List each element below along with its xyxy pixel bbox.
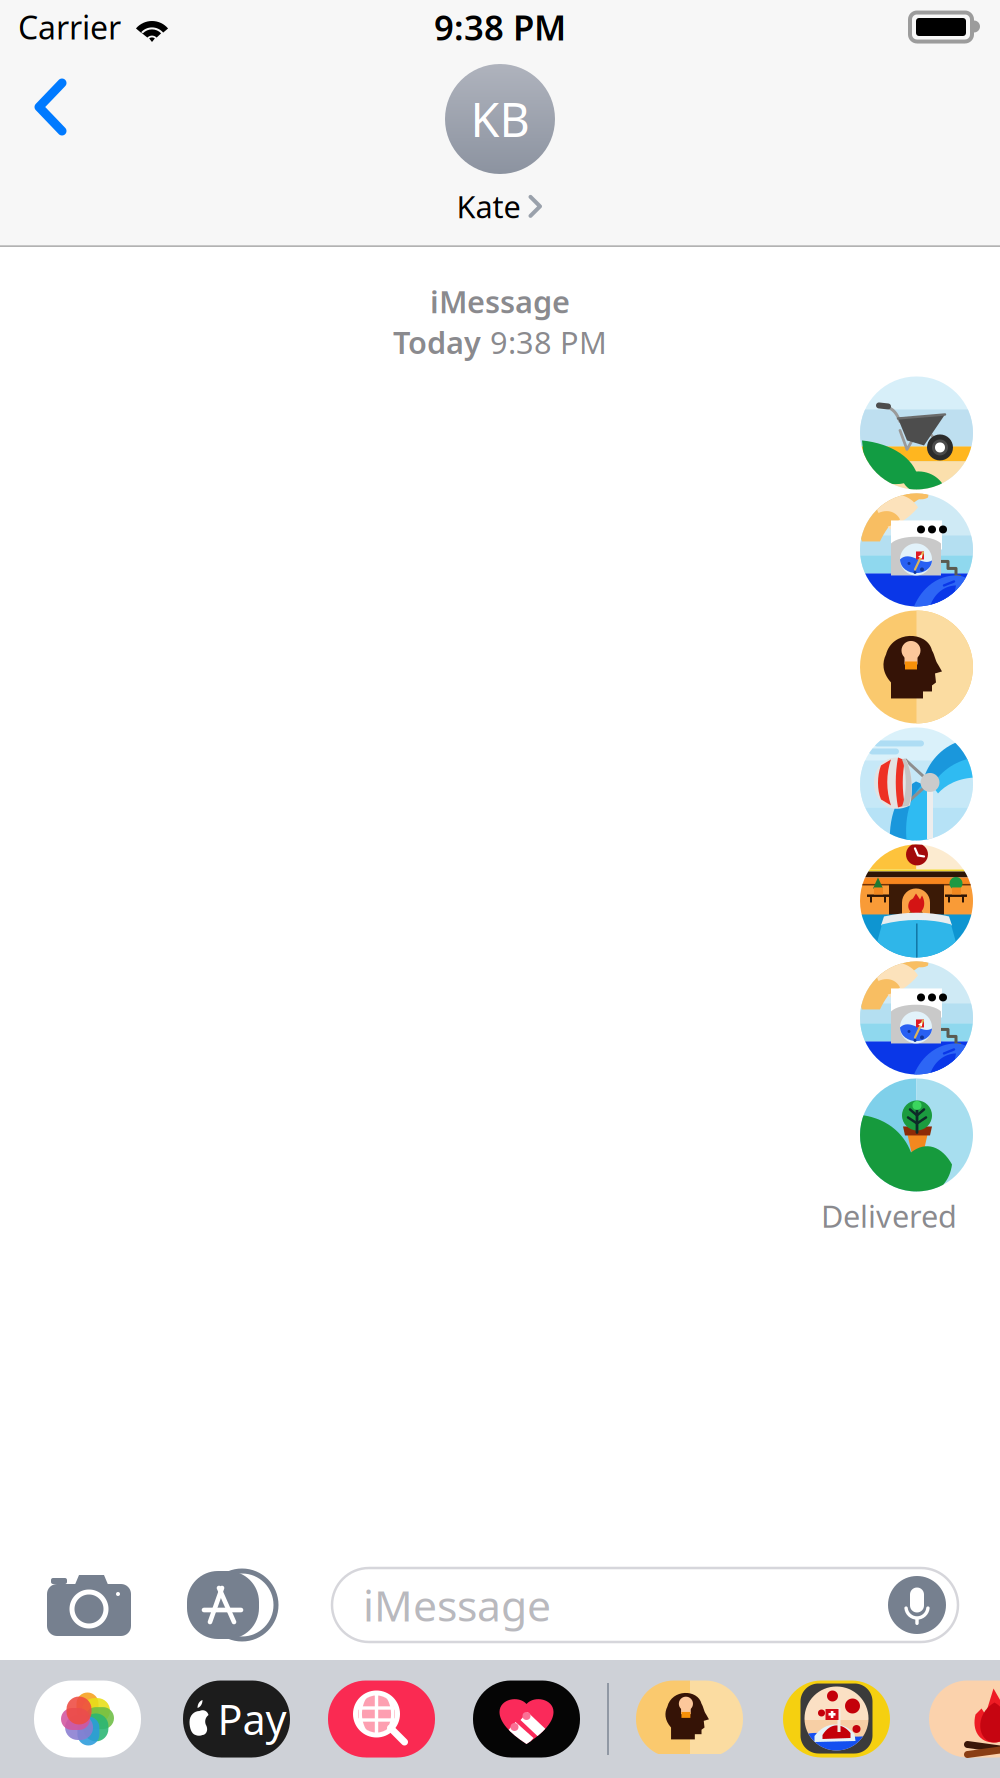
button[interactable]: Camera <box>37 1559 141 1651</box>
button[interactable]: Back <box>0 54 96 160</box>
button[interactable]: iMessage <box>332 1568 958 1642</box>
staticText: Carrier <box>18 6 121 48</box>
button[interactable]: Campfire Stickers <box>929 1680 1000 1757</box>
staticText: Kate <box>456 186 520 227</box>
staticText: 9:38 PM <box>490 322 607 362</box>
staticText: iMessage <box>430 281 570 322</box>
button[interactable]: Memoji Stickers <box>636 1680 743 1757</box>
button[interactable]: Digital Touch <box>473 1680 580 1757</box>
button[interactable]: Sticker Pack <box>783 1680 890 1757</box>
button[interactable]: Photos <box>34 1680 141 1757</box>
staticText: Delivered <box>821 1195 957 1236</box>
staticText: KB <box>470 88 529 150</box>
button[interactable]: Image Search <box>328 1680 435 1757</box>
staticText: Pay <box>217 1692 286 1746</box>
staticText: Today <box>393 322 481 362</box>
button[interactable]: KB <box>445 54 555 227</box>
button[interactable]: App Store <box>181 1556 283 1654</box>
button[interactable]: Apple Pay <box>183 1680 290 1757</box>
staticText: 9:38 PM <box>434 4 566 50</box>
staticText: iMessage <box>363 1577 551 1633</box>
